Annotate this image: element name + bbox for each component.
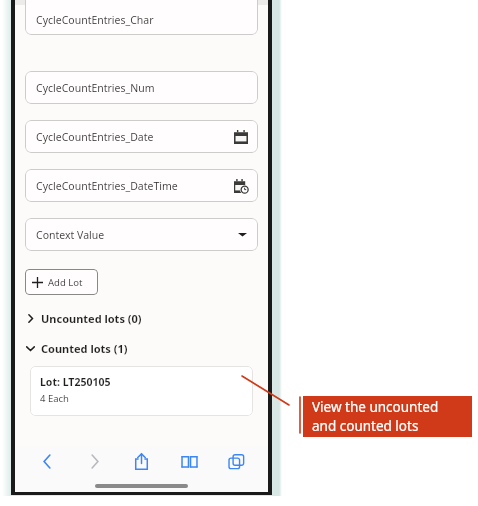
button[interactable]: Add Lot [25,269,98,295]
staticText: CycleCountEntries_Char [36,13,154,27]
other: Pick date and time [234,179,248,193]
button[interactable]: Back [32,446,62,476]
button[interactable]: Uncounted lots (0) [15,309,268,327]
button[interactable]: View the uncounted [303,396,472,437]
staticText: Add Lot [48,276,83,289]
button[interactable]: Tabs [221,446,251,476]
button[interactable]: Context Value [25,218,258,251]
staticText: CycleCountEntries_DateTime [36,179,178,193]
button[interactable]: CycleCountEntries_Num [25,71,258,104]
staticText: CycleCountEntries_Num [36,81,155,95]
other: Pick date [234,130,248,144]
staticText: View the uncounted [312,398,439,416]
staticText: Context Value [36,228,105,242]
staticText: CycleCountEntries_Date [36,130,154,144]
button[interactable]: CycleCountEntries_DateTime [25,169,258,202]
staticText: 4 Each [40,392,69,405]
button[interactable]: Lot: LT250105 [30,366,253,416]
staticText: and counted lots [312,417,419,435]
button[interactable]: Share [126,446,156,476]
staticText: Lot: LT250105 [40,375,111,389]
button[interactable]: Counted lots (1) [15,339,268,357]
button[interactable]: CycleCountEntries_Char [25,0,258,35]
button[interactable]: CycleCountEntries_Date [25,120,258,153]
staticText: Counted lots (1) [41,341,128,356]
button[interactable]: Forward [79,446,109,476]
staticText: Uncounted lots (0) [41,311,142,326]
button[interactable]: Bookmarks [174,446,204,476]
